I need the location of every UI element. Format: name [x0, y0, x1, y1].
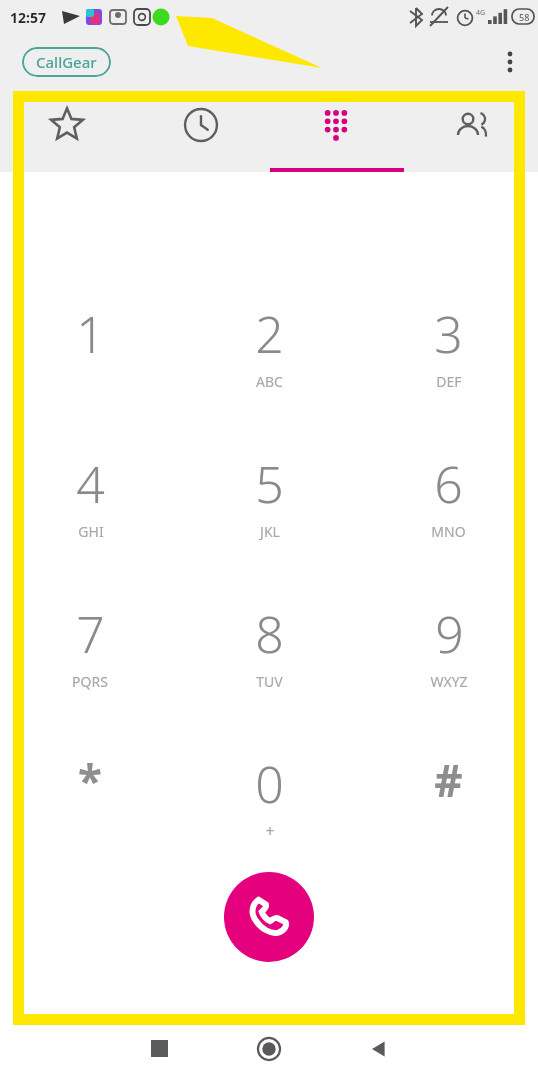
staticText: 7 — [76, 600, 105, 668]
button[interactable]: CallGear — [22, 47, 111, 77]
staticText: + — [265, 820, 275, 842]
button[interactable]: Contacts — [403, 90, 538, 172]
button[interactable]: Recents — [134, 90, 268, 172]
button[interactable]: Call — [224, 872, 314, 962]
staticText: 5 — [255, 450, 284, 518]
button[interactable]: 1 — [0, 300, 180, 450]
button[interactable]: 2 — [180, 300, 359, 450]
staticText: 6 — [434, 450, 463, 518]
button[interactable]: 6 — [359, 450, 538, 600]
button[interactable]: 7 — [0, 600, 180, 750]
button[interactable]: Home — [214, 1025, 324, 1072]
staticText: 8 — [255, 600, 284, 668]
staticText: 0 — [255, 750, 284, 818]
button[interactable]: * — [0, 750, 180, 868]
staticText: 58 — [519, 11, 530, 23]
button[interactable]: 9 — [359, 600, 538, 750]
button[interactable]: Favorites — [0, 90, 134, 172]
staticText: CallGear — [36, 52, 97, 72]
staticText: 4 — [76, 450, 105, 518]
button[interactable]: Dialpad — [268, 90, 403, 172]
staticText: MNO — [431, 522, 466, 541]
button[interactable]: 5 — [180, 450, 359, 600]
staticText: TUV — [256, 672, 283, 691]
staticText: 2 — [255, 300, 284, 368]
staticText: # — [434, 750, 463, 810]
staticText: 3 — [434, 300, 463, 368]
button[interactable]: Back — [324, 1025, 434, 1072]
staticText: * — [78, 750, 102, 810]
staticText: ABC — [256, 372, 283, 391]
staticText: PQRS — [72, 672, 108, 691]
staticText: 12:57 — [10, 8, 46, 27]
button[interactable]: # — [359, 750, 538, 868]
staticText: WXYZ — [430, 672, 468, 691]
button[interactable]: 4 — [0, 450, 180, 600]
button[interactable]: Recents — [104, 1025, 214, 1072]
staticText: 4G — [476, 8, 486, 18]
button[interactable]: 0 — [180, 750, 359, 868]
staticText: DEF — [436, 372, 462, 391]
button[interactable]: More options — [488, 40, 532, 84]
staticText: GHI — [78, 522, 104, 541]
staticText: 9 — [435, 600, 464, 668]
staticText: 1 — [76, 300, 105, 368]
staticText: JKL — [260, 522, 280, 541]
button[interactable]: 3 — [359, 300, 538, 450]
button[interactable]: 8 — [180, 600, 359, 750]
